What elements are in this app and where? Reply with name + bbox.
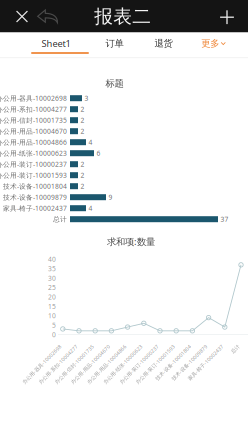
staticText: 35: [48, 264, 56, 273]
button[interactable]: Add: [210, 1, 244, 33]
button[interactable]: 退货: [142, 31, 184, 55]
staticText: 技术-设备-10009879: [3, 193, 67, 202]
staticText: 更多: [201, 38, 219, 49]
staticText: 求和项:数量: [107, 235, 155, 248]
staticText: 技术-设备-10001804: [149, 360, 197, 367]
staticText: 办公用-用品-10004866: [0, 138, 67, 147]
staticText: 办公用-纸张-10000623: [0, 149, 67, 158]
staticText: 2: [80, 182, 84, 191]
staticText: 办公用-用品-10004670: [0, 127, 67, 136]
button[interactable]: Undo: [33, 0, 63, 33]
staticText: 办公用-装订-10000237: [112, 360, 165, 367]
staticText: 0: [52, 330, 56, 339]
staticText: 4: [88, 204, 92, 213]
staticText: 技术-设备-10009879: [166, 360, 214, 367]
staticText: 办公用-信封-10001735: [47, 360, 100, 367]
button[interactable]: Sheet1: [27, 31, 85, 55]
staticText: 2: [80, 127, 84, 136]
staticText: 家具-椅子-10002437: [182, 360, 230, 367]
staticText: 办公用-系扣-10004277: [0, 105, 67, 114]
staticText: 2: [80, 171, 84, 180]
staticText: 标题: [105, 78, 123, 89]
staticText: 15: [48, 302, 56, 311]
staticText: 办公用-器具-10002698: [0, 94, 67, 103]
staticText: 10: [48, 311, 56, 320]
staticText: 办公用-器具-10002698: [15, 360, 68, 367]
staticText: 办公用-装订-10000237: [0, 160, 67, 169]
staticText: 家具-椅子-10002437: [3, 204, 67, 213]
staticText: 40: [48, 255, 56, 264]
staticText: 办公用-纸张-10000623: [96, 360, 149, 367]
staticText: 37: [220, 215, 228, 224]
staticText: 订单: [105, 38, 123, 49]
staticText: 报表二: [94, 5, 151, 28]
staticText: 3: [84, 94, 88, 103]
staticText: 2: [80, 105, 84, 114]
staticText: 30: [48, 273, 56, 283]
staticText: 25: [48, 283, 56, 292]
staticText: Sheet1: [41, 37, 70, 50]
button[interactable]: 订单: [93, 31, 135, 55]
staticText: 4: [88, 138, 92, 147]
staticText: 办公用-信封-10001735: [0, 116, 67, 125]
staticText: 5: [52, 321, 56, 330]
staticText: 办公用-用品-10004670: [63, 360, 116, 367]
staticText: 2: [80, 116, 84, 125]
staticText: 技术-设备-10001804: [3, 182, 67, 191]
button[interactable]: Close: [7, 0, 37, 33]
staticText: 退货: [154, 38, 172, 49]
staticText: 6: [96, 149, 100, 158]
staticText: 2: [80, 160, 84, 169]
staticText: 办公用-装订-10001593: [128, 360, 181, 367]
staticText: 办公用-系扣-10004277: [31, 360, 84, 367]
button[interactable]: 更多: [192, 31, 234, 55]
staticText: 总计: [53, 215, 67, 223]
staticText: 办公用-用品-10004866: [80, 360, 133, 367]
staticText: 20: [48, 292, 56, 301]
staticText: 9: [108, 193, 112, 202]
staticText: 办公用-装订-10001593: [0, 171, 67, 180]
